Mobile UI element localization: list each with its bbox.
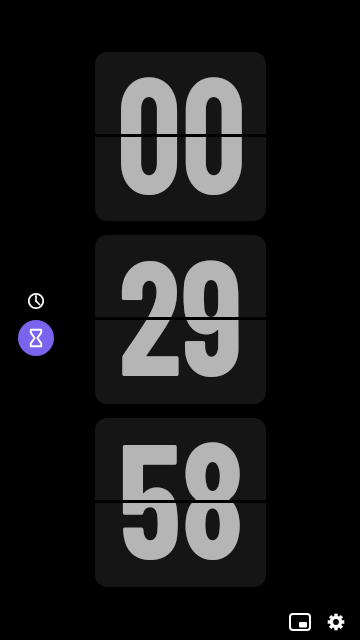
button[interactable]: [286, 608, 314, 636]
staticText: 58: [119, 418, 244, 587]
staticText: 00: [117, 52, 246, 221]
button[interactable]: [24, 289, 48, 313]
button[interactable]: [18, 320, 54, 356]
staticText: 29: [118, 235, 243, 404]
button[interactable]: [322, 608, 350, 636]
